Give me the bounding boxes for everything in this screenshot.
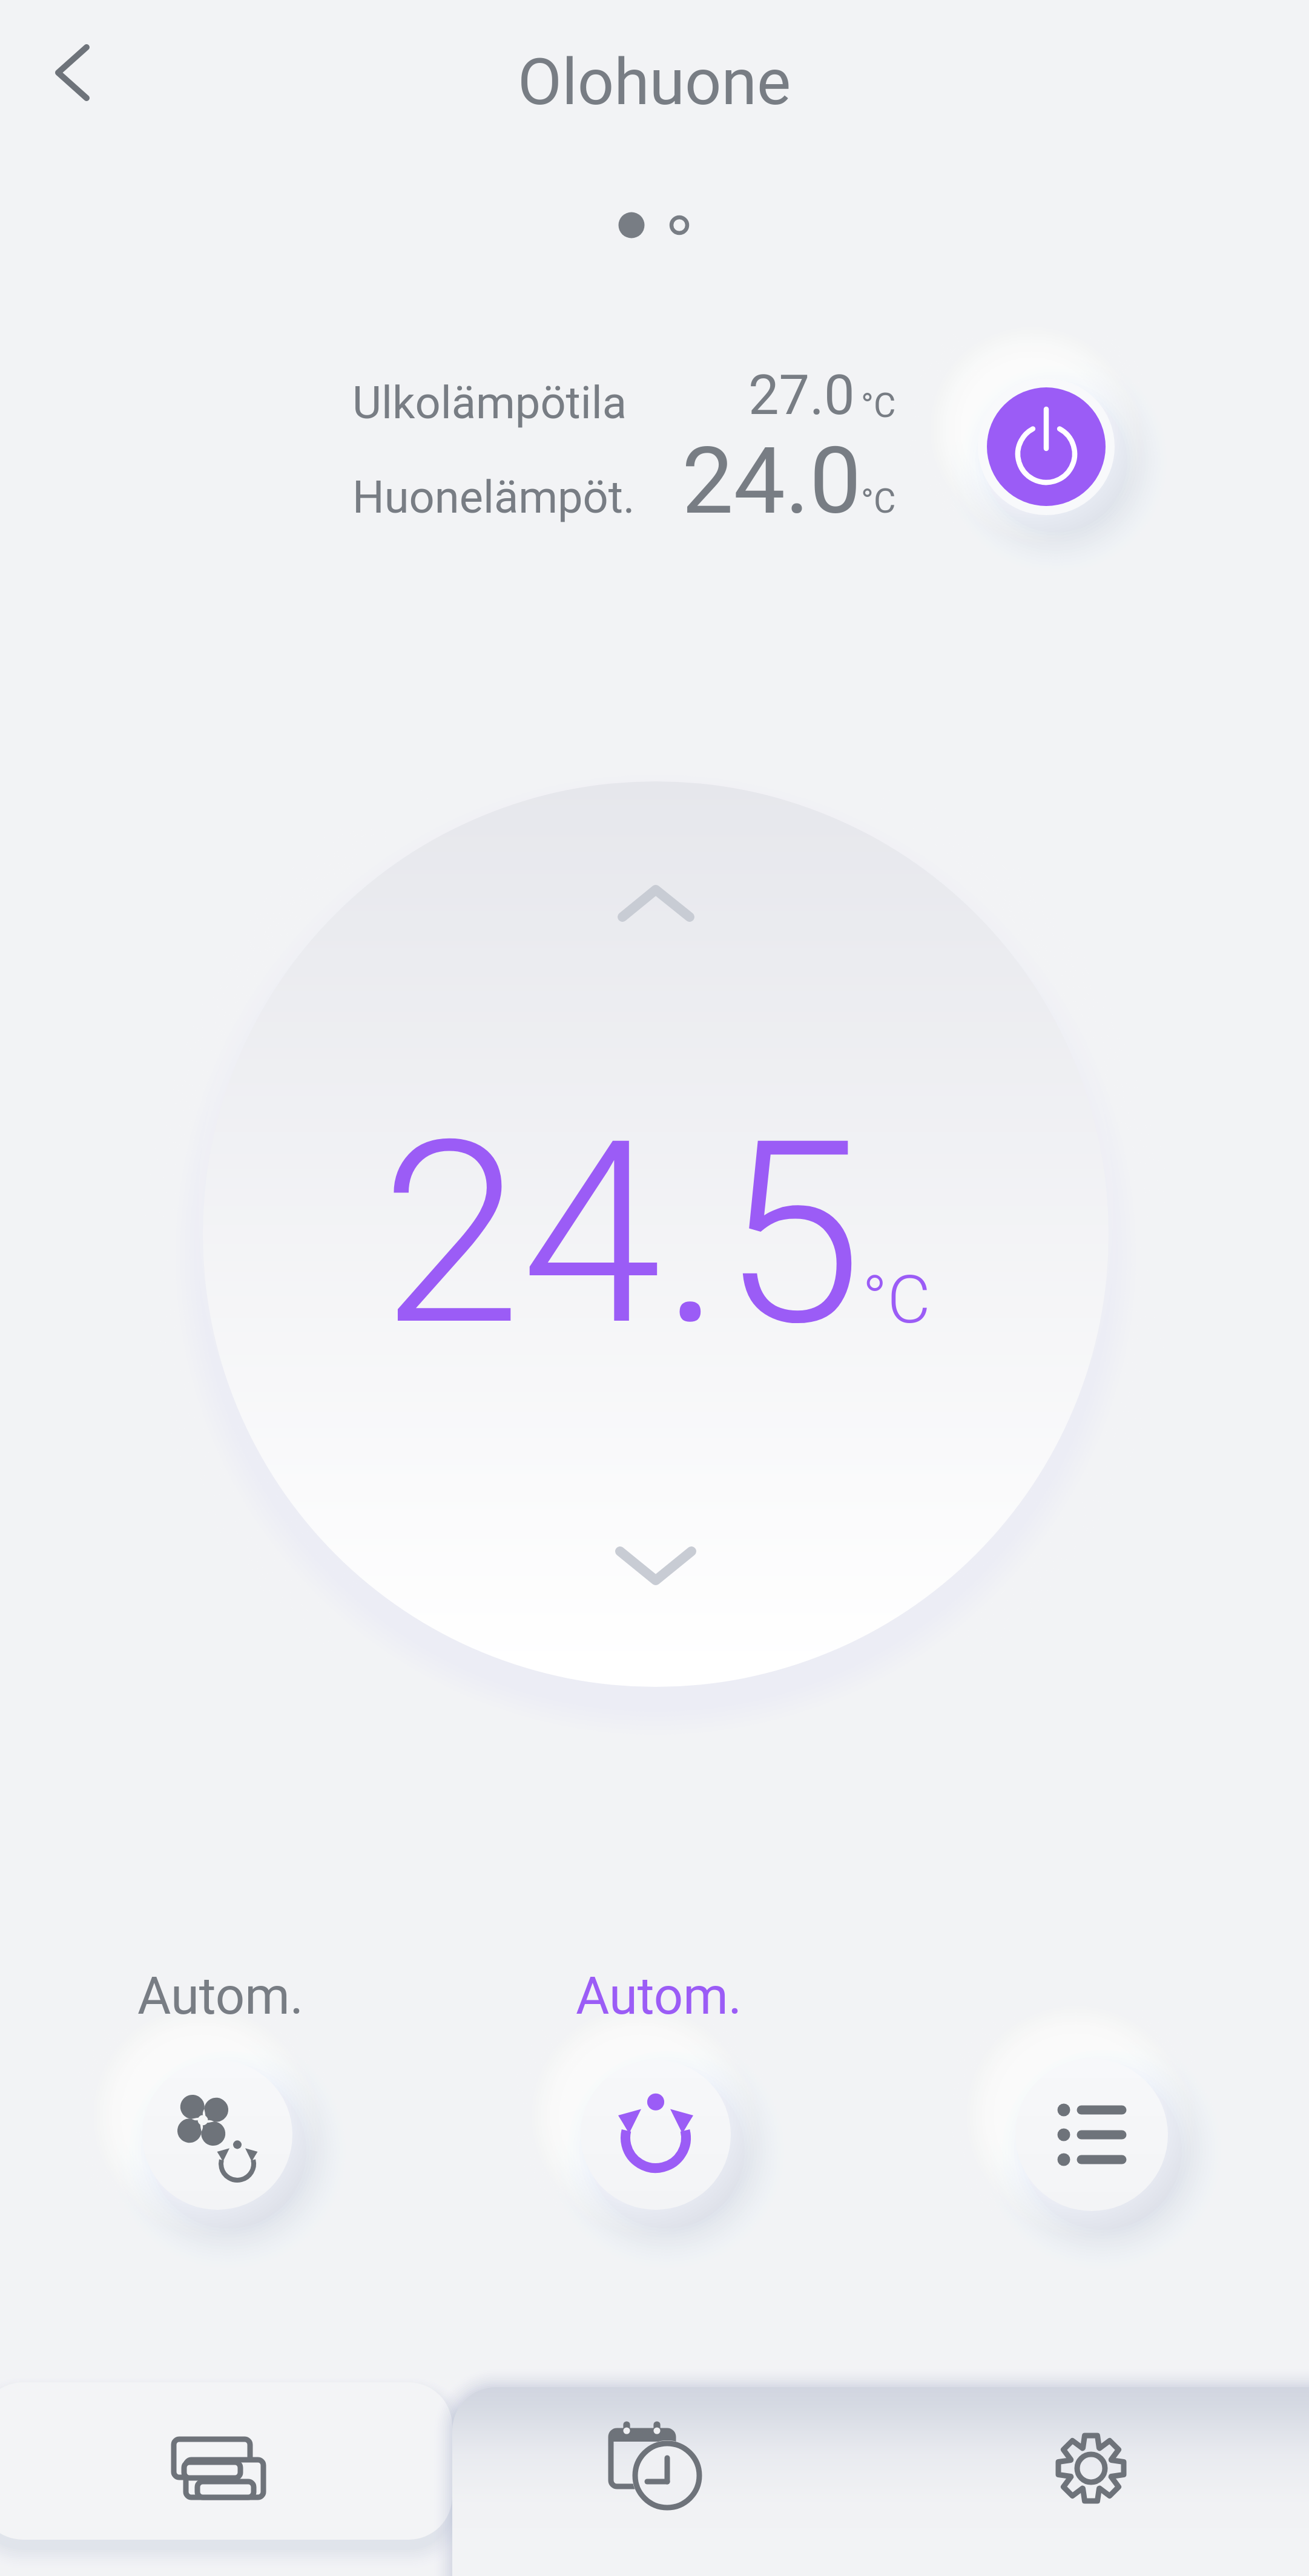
button[interactable]: Power <box>978 378 1115 515</box>
button[interactable]: Increase temperature <box>575 859 736 956</box>
staticText: Ulkolämpötila <box>352 376 627 429</box>
button[interactable]: Back <box>24 24 133 127</box>
button[interactable]: More options <box>1015 2058 1168 2211</box>
staticText: Autom. <box>137 1966 304 2026</box>
button[interactable]: Settings <box>972 2386 1214 2576</box>
staticText: Huonelämpöt. <box>352 471 635 524</box>
button[interactable]: Page 1 <box>605 200 660 252</box>
staticText: Autom. <box>576 1966 742 2026</box>
button[interactable]: Page 2 <box>655 200 710 252</box>
button[interactable]: Fan speed automatic <box>137 1961 298 2209</box>
staticText: Olohuone <box>518 45 791 120</box>
staticText: 24.0 <box>682 427 862 535</box>
button[interactable]: Mode automatic <box>575 1961 736 2209</box>
staticText: 24.5 <box>381 1086 863 1382</box>
staticText: °C <box>861 386 896 425</box>
staticText: 27.0 <box>748 364 855 427</box>
button[interactable]: Decrease temperature <box>575 1513 736 1616</box>
button[interactable]: Devices <box>0 2382 452 2576</box>
button[interactable]: Schedule <box>533 2386 775 2576</box>
staticText: °C <box>861 481 896 521</box>
staticText: °C <box>862 1261 931 1339</box>
